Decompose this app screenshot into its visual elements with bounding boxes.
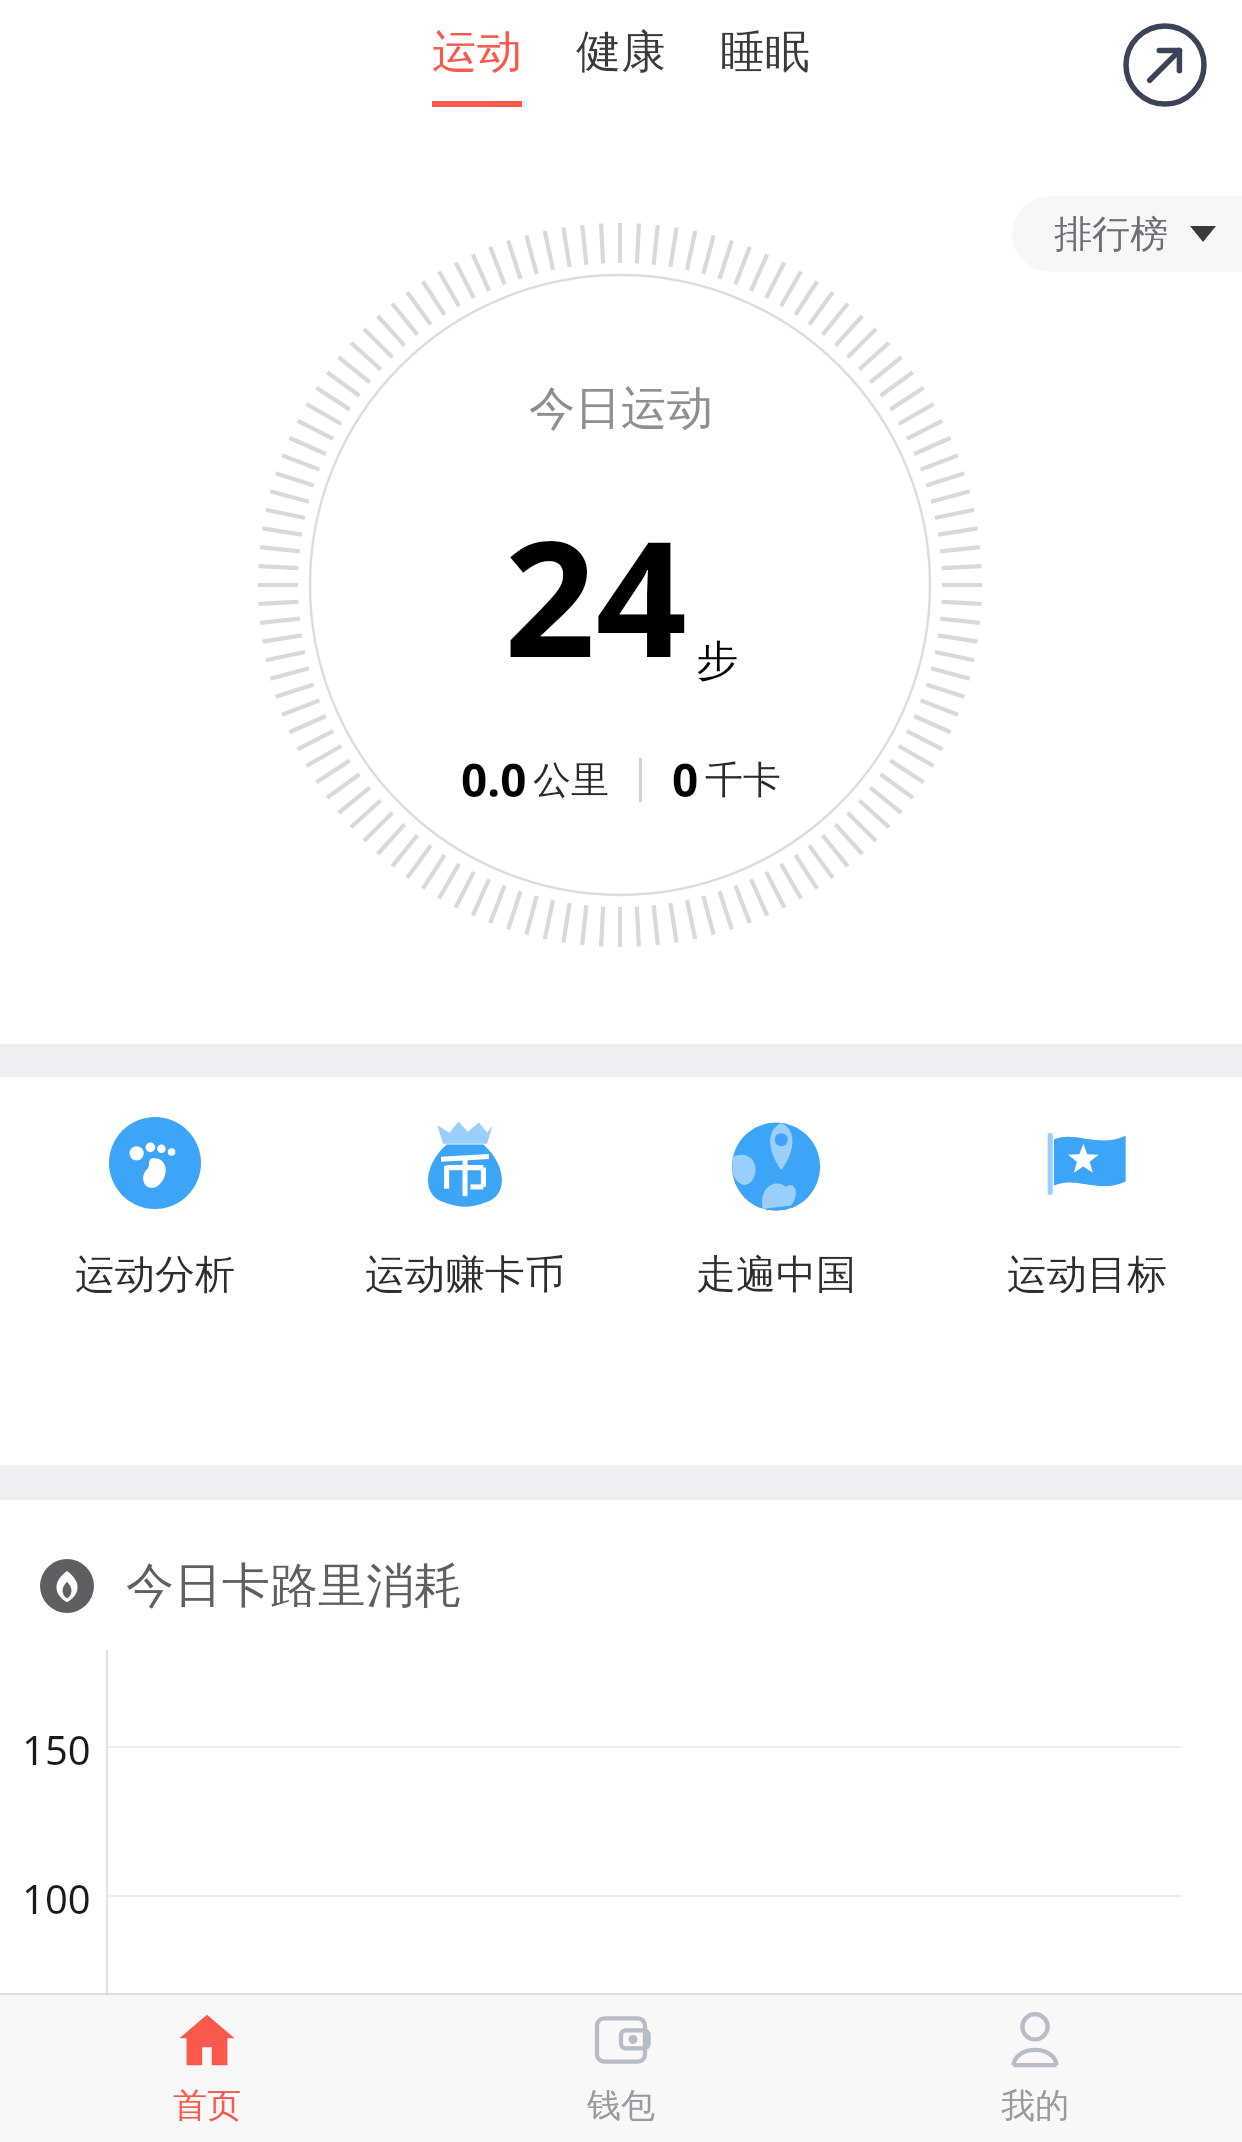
staticText: 排行榜 <box>1054 210 1168 258</box>
staticText: 走遍中国 <box>696 1249 856 1299</box>
staticText: 150 <box>22 1722 91 1776</box>
staticText: 运动赚卡币 <box>365 1249 565 1299</box>
staticText: 今日卡路里消耗 <box>126 1556 462 1616</box>
staticText: 钱包 <box>587 2084 655 2127</box>
button[interactable]: 今日运动 <box>461 380 781 811</box>
staticText: 运动分析 <box>75 1249 235 1299</box>
staticText: 健康 <box>576 24 666 81</box>
button[interactable]: 我的 <box>828 1995 1242 2142</box>
staticText: 0 <box>672 748 699 811</box>
staticText: 首页 <box>173 2084 241 2127</box>
button[interactable]: 运动 <box>420 18 534 113</box>
staticText: 睡眠 <box>720 24 810 81</box>
staticText: 运动目标 <box>1007 1249 1167 1299</box>
button[interactable]: 今日卡路里消耗 <box>40 1556 462 1616</box>
button[interactable]: 走遍中国 <box>620 1117 931 1299</box>
staticText: 运动 <box>432 24 522 81</box>
button[interactable]: 运动赚卡币 <box>310 1117 620 1299</box>
staticText: 千卡 <box>705 756 781 804</box>
staticText: 今日运动 <box>529 380 713 438</box>
staticText: 我的 <box>1001 2084 1069 2127</box>
button[interactable]: 健康 <box>564 18 678 113</box>
staticText: 24 <box>504 486 688 704</box>
button[interactable]: 排行榜 <box>1012 196 1242 272</box>
staticText: 公里 <box>533 756 609 804</box>
button[interactable]: 首页 <box>0 1995 414 2142</box>
button[interactable]: 运动分析 <box>0 1117 310 1299</box>
button[interactable]: 运动目标 <box>931 1117 1242 1299</box>
button[interactable]: 钱包 <box>414 1995 828 2142</box>
staticText: 步 <box>696 635 738 688</box>
staticText: 0.0 <box>461 748 527 811</box>
button[interactable]: Share <box>1107 7 1223 123</box>
staticText: 100 <box>22 1871 91 1925</box>
button[interactable]: 睡眠 <box>708 18 822 113</box>
